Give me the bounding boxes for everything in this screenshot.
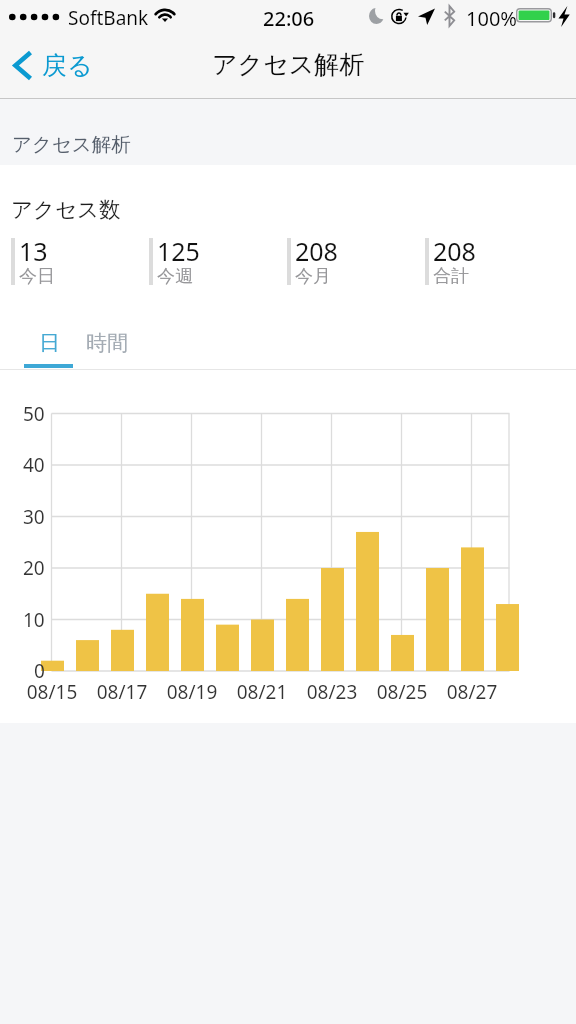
staticText: 22:06 — [263, 5, 315, 32]
staticText: 50 — [23, 401, 45, 423]
button[interactable]: 時間 — [78, 322, 136, 368]
staticText: 08/15 — [12, 679, 92, 705]
staticText: 13 — [19, 234, 48, 268]
staticText: 208 — [295, 234, 338, 268]
staticText: 208 — [433, 234, 476, 268]
staticText: 125 — [157, 234, 200, 268]
staticText: 日 — [39, 330, 60, 356]
button[interactable]: 戻る — [0, 44, 107, 87]
staticText: 0 — [34, 658, 45, 680]
staticText: 08/25 — [362, 679, 442, 705]
staticText: 08/21 — [222, 679, 302, 705]
staticText: 今日 — [19, 265, 55, 288]
staticText: 今週 — [157, 265, 193, 288]
staticText: 08/19 — [152, 679, 232, 705]
other: 戻る — [13, 50, 32, 81]
staticText: 10 — [23, 607, 45, 629]
staticText: 100% — [466, 5, 517, 32]
staticText: アクセス解析 — [12, 132, 131, 157]
staticText: 20 — [23, 555, 45, 577]
staticText: 08/17 — [82, 679, 162, 705]
staticText: 08/27 — [432, 679, 512, 705]
staticText: 時間 — [86, 330, 128, 356]
staticText: 戻る — [42, 50, 93, 81]
staticText: アクセス解析 — [212, 49, 365, 80]
button[interactable]: 日 — [24, 322, 74, 368]
staticText: 30 — [23, 504, 45, 526]
staticText: アクセス数 — [11, 196, 121, 223]
staticText: 今月 — [295, 265, 331, 288]
staticText: 40 — [23, 452, 45, 474]
staticText: 08/23 — [292, 679, 372, 705]
staticText: 合計 — [433, 265, 469, 288]
staticText: SoftBank — [68, 5, 149, 31]
